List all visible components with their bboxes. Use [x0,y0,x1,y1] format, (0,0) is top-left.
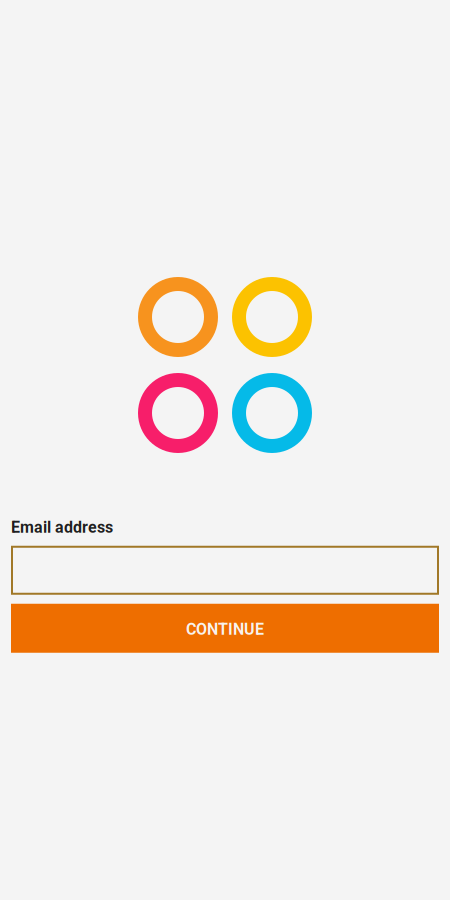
button[interactable]: Email address text field [11,546,439,595]
staticText: CONTINUE [186,620,264,639]
staticText: Email address [11,518,113,537]
button[interactable]: CONTINUE [11,604,439,653]
